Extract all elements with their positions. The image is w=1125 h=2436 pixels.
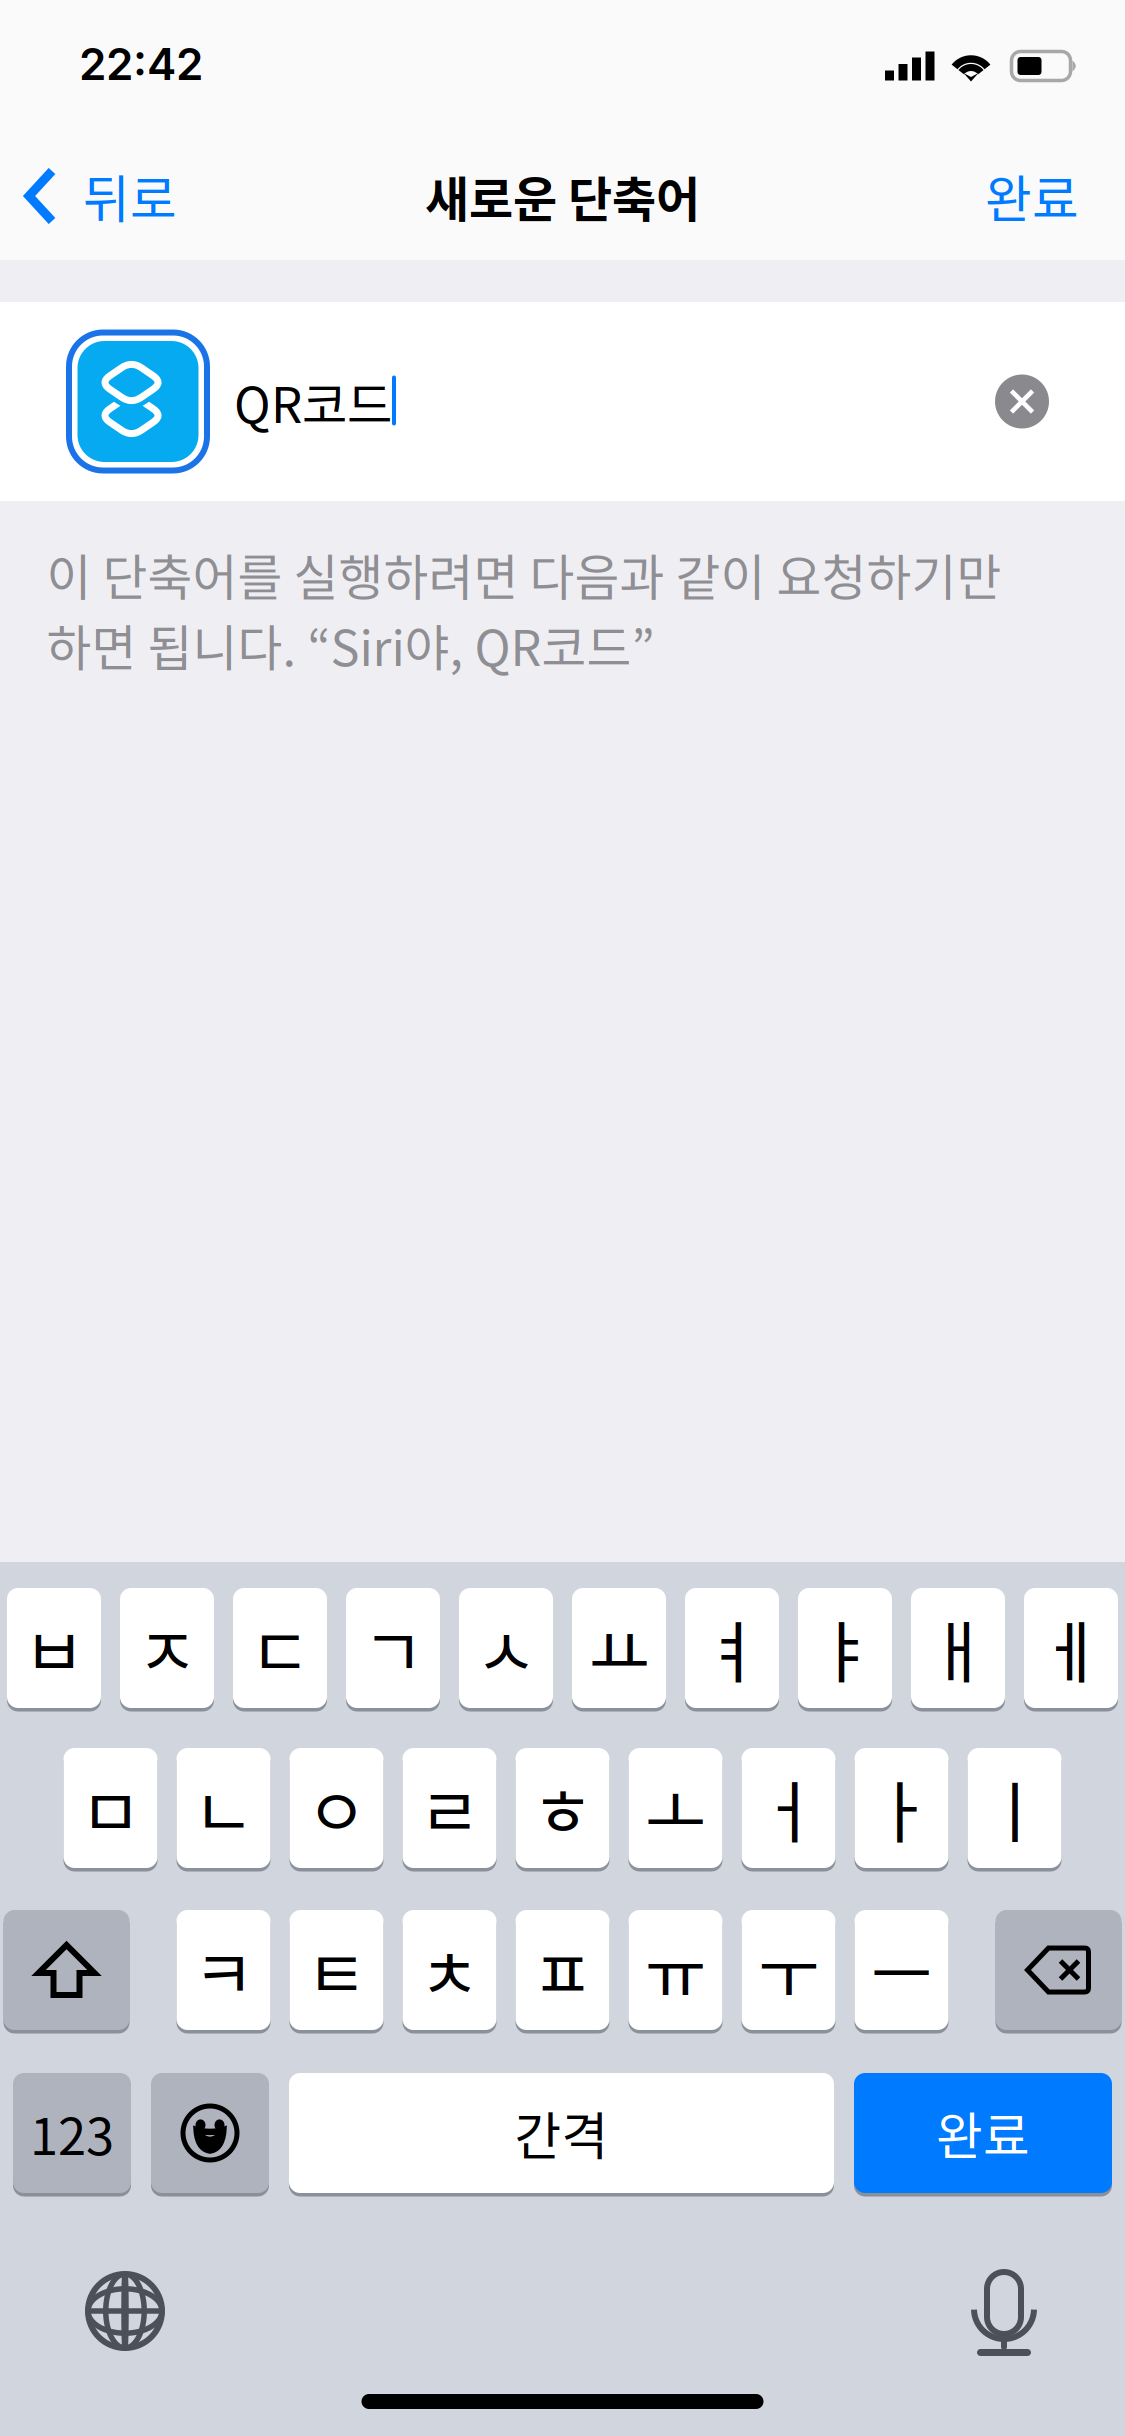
staticText: ㅛ: [588, 1600, 649, 1696]
button[interactable]: ㄴ: [176, 1746, 270, 1870]
staticText: ㅔ: [1040, 1600, 1101, 1696]
staticText: ㅅ: [475, 1600, 536, 1696]
button[interactable]: ㅔ: [1024, 1586, 1118, 1710]
staticText: 뒤로: [83, 159, 177, 233]
button[interactable]: ㅡ: [854, 1908, 948, 2032]
staticText: ㅑ: [814, 1600, 875, 1696]
button[interactable]: ㄷ: [233, 1586, 327, 1710]
button[interactable]: ㅗ: [628, 1746, 722, 1870]
button[interactable]: Shift: [3, 1908, 129, 2032]
staticText: ㅠ: [645, 1922, 706, 2018]
staticText: 완료: [985, 159, 1079, 233]
button[interactable]: ㅜ: [741, 1908, 835, 2032]
staticText: 22:42: [79, 37, 203, 91]
staticText: ㅊ: [419, 1922, 480, 2018]
button[interactable]: ㄹ: [402, 1746, 496, 1870]
staticText: ㅌ: [306, 1922, 367, 2018]
staticText: ㅗ: [645, 1760, 706, 1856]
button[interactable]: ㅛ: [572, 1586, 666, 1710]
button[interactable]: ㅓ: [741, 1746, 835, 1870]
staticText: ㄱ: [362, 1600, 423, 1696]
staticText: ㅋ: [193, 1922, 254, 2018]
button[interactable]: ㅈ: [120, 1586, 214, 1710]
staticText: ㅜ: [758, 1922, 819, 2018]
button[interactable]: ㅇ: [289, 1746, 383, 1870]
button[interactable]: ㅍ: [515, 1908, 609, 2032]
staticText: ㅈ: [136, 1600, 197, 1696]
staticText: 새로운 단축어: [425, 161, 700, 231]
button[interactable]: 간격: [289, 2071, 834, 2195]
button[interactable]: ㄱ: [346, 1586, 440, 1710]
staticText: ㅣ: [984, 1760, 1045, 1856]
staticText: ㅐ: [927, 1600, 988, 1696]
staticText: 간격: [514, 2096, 608, 2170]
button[interactable]: ㅊ: [402, 1908, 496, 2032]
button[interactable]: ㅌ: [289, 1908, 383, 2032]
staticText: 완료: [936, 2096, 1030, 2170]
staticText: ㅡ: [871, 1922, 932, 2018]
staticText: ㄹ: [419, 1760, 480, 1856]
staticText: ㅇ: [306, 1760, 367, 1856]
button[interactable]: ㅕ: [685, 1586, 779, 1710]
button[interactable]: ㅅ: [459, 1586, 553, 1710]
button[interactable]: 완료: [854, 2071, 1112, 2195]
button[interactable]: ㅂ: [7, 1586, 101, 1710]
button[interactable]: Emoji: [151, 2071, 269, 2195]
button[interactable]: ㅠ: [628, 1908, 722, 2032]
staticText: ㅂ: [23, 1600, 84, 1696]
button[interactable]: 완료: [961, 132, 1125, 260]
staticText: QR코드: [234, 366, 392, 437]
button[interactable]: Backspace: [995, 1908, 1121, 2032]
staticText: 123: [30, 2096, 114, 2170]
staticText: ㄴ: [193, 1760, 254, 1856]
button[interactable]: 123: [13, 2071, 131, 2195]
button[interactable]: Dictation: [971, 2269, 1037, 2353]
button[interactable]: ㅏ: [854, 1746, 948, 1870]
staticText: ㅓ: [758, 1760, 819, 1856]
staticText: ㄷ: [249, 1600, 310, 1696]
staticText: ㅍ: [532, 1922, 593, 2018]
button[interactable]: 뒤로: [0, 132, 201, 260]
button[interactable]: ㅋ: [176, 1908, 270, 2032]
staticText: ㅁ: [80, 1760, 141, 1856]
button[interactable]: ㅁ: [63, 1746, 157, 1870]
staticText: ㅏ: [871, 1760, 932, 1856]
button[interactable]: Next keyboard: [85, 2271, 165, 2351]
button[interactable]: ㅑ: [798, 1586, 892, 1710]
button[interactable]: ㅐ: [911, 1586, 1005, 1710]
staticText: 이 단축어를 실행하려면 다음과 같이 요청하기만 하면 됩니다. “Siri야…: [46, 539, 1001, 680]
staticText: ㅎ: [532, 1760, 593, 1856]
button[interactable]: ㅎ: [515, 1746, 609, 1870]
button[interactable]: Clear text: [995, 374, 1049, 428]
button[interactable]: ㅣ: [967, 1746, 1061, 1870]
staticText: ㅕ: [701, 1600, 762, 1696]
